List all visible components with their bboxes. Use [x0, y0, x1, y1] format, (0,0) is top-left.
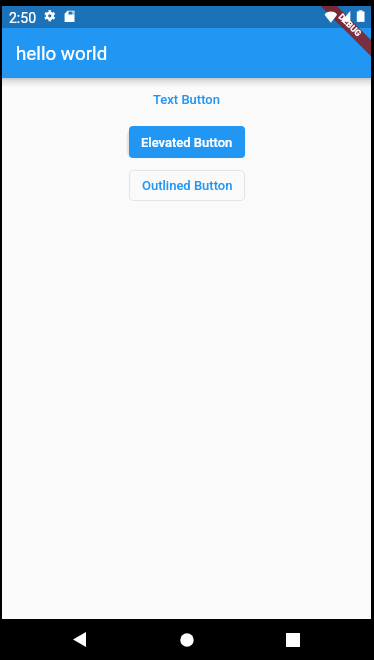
staticText: hello world [16, 43, 108, 65]
staticText: Elevated Button [141, 135, 233, 150]
staticText: DEBUG [337, 12, 363, 38]
button[interactable]: Recents [271, 619, 315, 660]
button[interactable]: Home [165, 619, 209, 660]
staticText: 2:50 [9, 10, 36, 26]
staticText: Outlined Button [142, 178, 233, 193]
staticText: Text Button [153, 92, 220, 107]
button[interactable]: Back [57, 619, 101, 660]
button[interactable]: Text Button [145, 87, 228, 112]
button[interactable]: Outlined Button [129, 170, 245, 201]
button[interactable]: Elevated Button [129, 126, 245, 158]
